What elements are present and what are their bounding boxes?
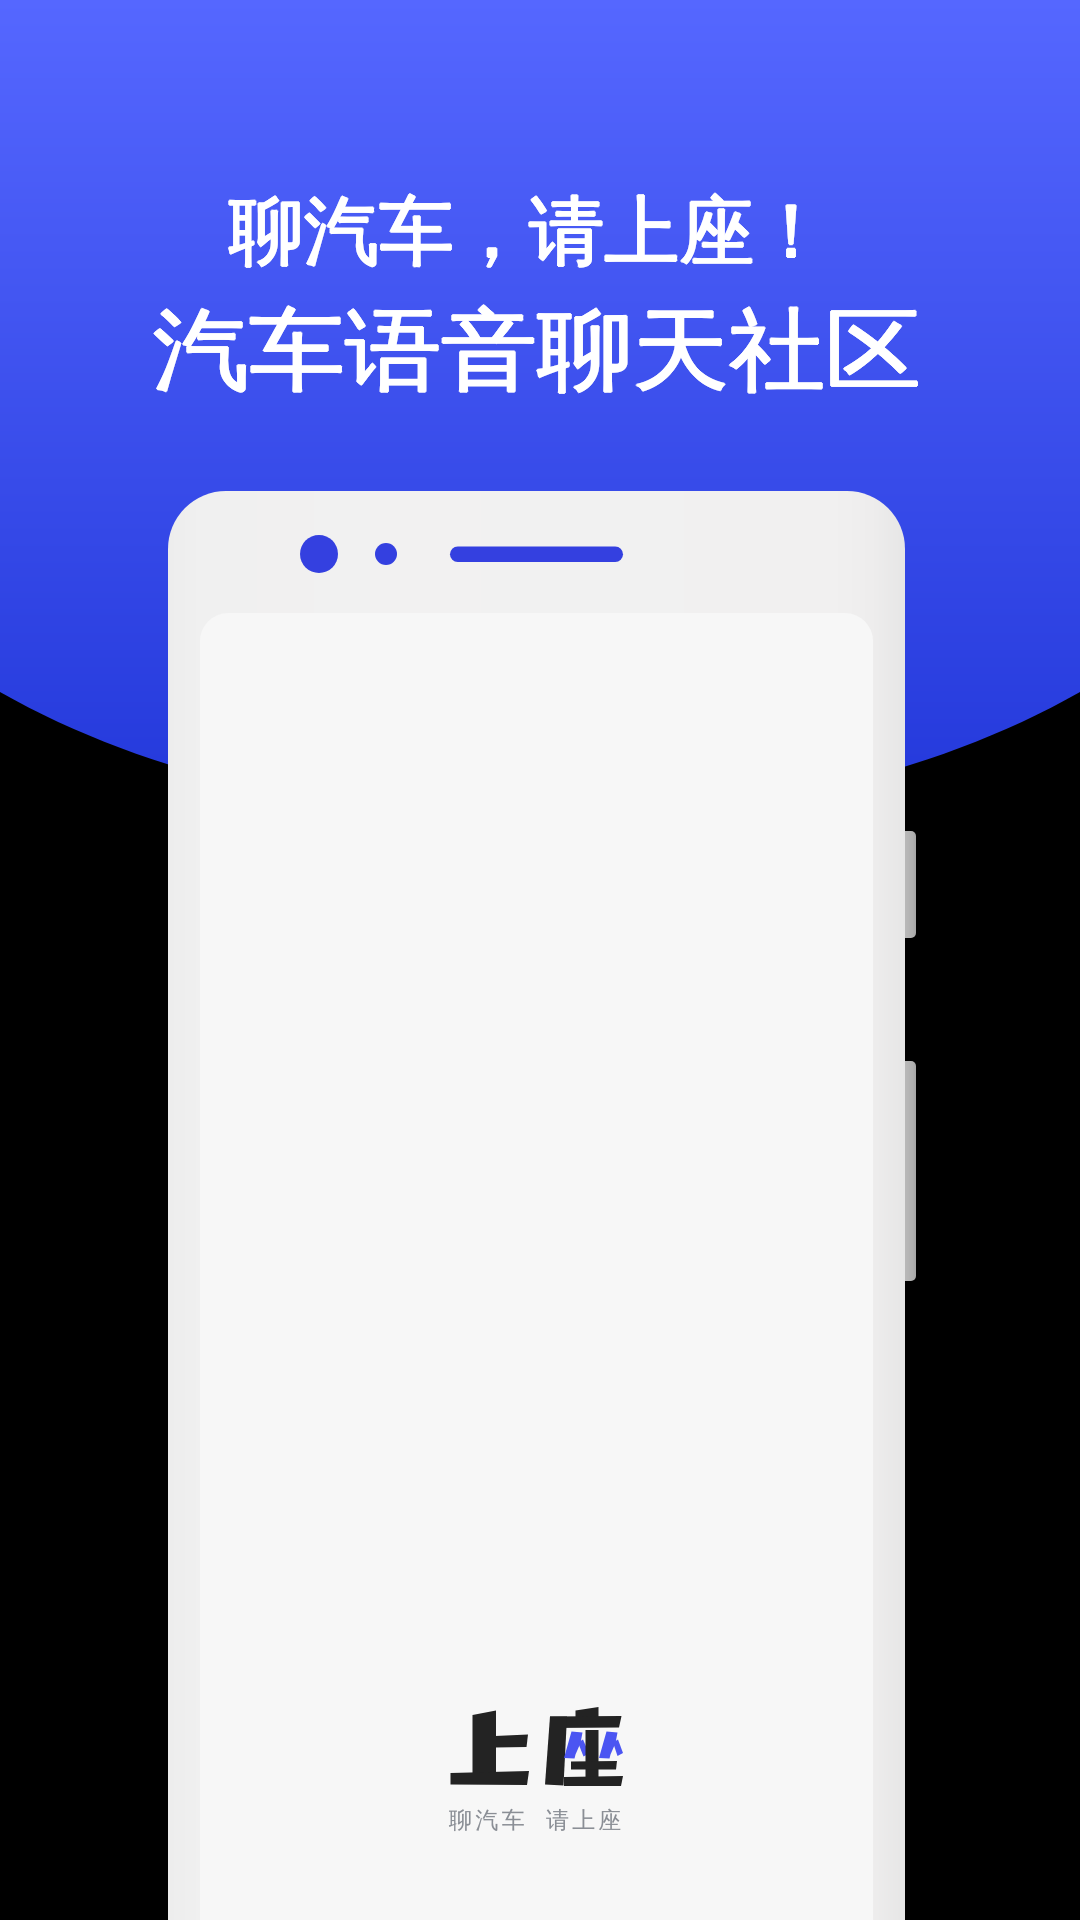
staticText: 聊汽车 请上座 (449, 1803, 625, 1834)
staticText: 汽车语音聊天社区 (153, 296, 921, 408)
staticText: 聊汽车，请上座！ (229, 185, 829, 279)
staticText: 汽车语音聊天社区 (154, 295, 922, 407)
staticText: 聊汽车，请上座！ (229, 184, 829, 278)
staticText: 聊汽车，请上座！ (229, 186, 829, 280)
staticText: 聊汽车，请上座！ (228, 185, 828, 279)
staticText: 汽车语音聊天社区 (152, 295, 920, 407)
staticText: 汽车语音聊天社区 (153, 295, 921, 407)
staticText: 聊汽车，请上座！ (230, 185, 830, 279)
button[interactable]: 上座 App 预览 (168, 491, 905, 1591)
staticText: 汽车语音聊天社区 (153, 294, 921, 406)
button[interactable]: 上座 — 聊汽车 请上座 (440, 1694, 640, 1840)
